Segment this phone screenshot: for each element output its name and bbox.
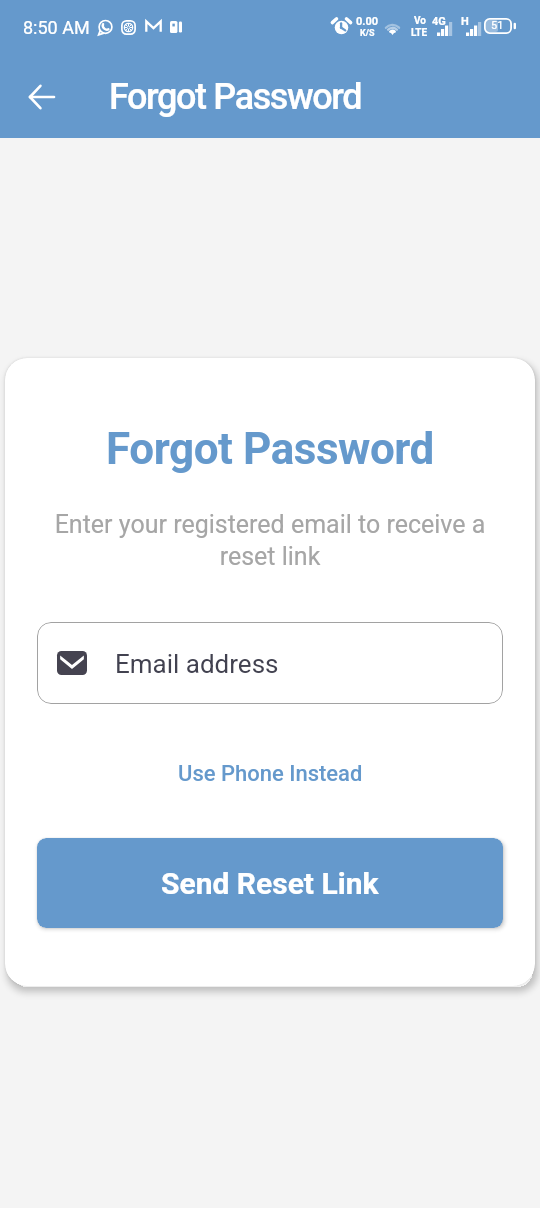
staticText: K/S	[360, 28, 375, 39]
staticText: 51	[491, 19, 504, 32]
staticText: 0.00	[356, 15, 379, 28]
staticText: H	[461, 15, 469, 28]
staticText: Enter your registered email to receive a…	[49, 510, 491, 571]
button[interactable]: Send Reset Link	[37, 838, 503, 928]
staticText: 8:50 AM	[23, 17, 90, 38]
staticText: 4G	[432, 15, 446, 28]
staticText: Forgot Password	[109, 76, 362, 118]
staticText: Vo	[414, 15, 426, 27]
staticText: Email address	[115, 649, 279, 679]
staticText: Send Reset Link	[161, 866, 379, 901]
staticText: Use Phone Instead	[178, 761, 363, 787]
button[interactable]: Use Phone Instead	[168, 756, 373, 792]
button[interactable]: Email address	[37, 622, 503, 704]
staticText: LTE	[411, 27, 428, 39]
button[interactable]: Back	[14, 69, 70, 125]
staticText: Forgot Password	[106, 423, 434, 475]
